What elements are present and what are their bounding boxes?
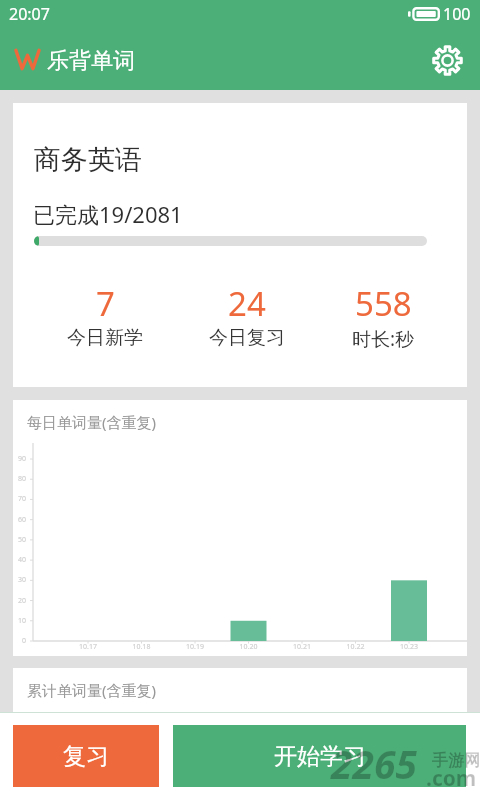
staticText: 今日新学 bbox=[67, 326, 143, 350]
staticText: 558 bbox=[355, 281, 412, 326]
button[interactable]: 复习 bbox=[13, 725, 159, 787]
staticText: 100 bbox=[443, 3, 471, 25]
staticText: 已完成19/2081 bbox=[33, 199, 183, 229]
staticText: 2265 bbox=[331, 737, 417, 790]
button[interactable]: 累计单词量(含重复) bbox=[13, 668, 467, 712]
staticText: 累计单词量(含重复) bbox=[27, 680, 157, 700]
button[interactable]: 商务英语 bbox=[13, 103, 467, 387]
button[interactable]: Settings bbox=[425, 38, 469, 82]
button[interactable]: 开始学习 bbox=[173, 725, 466, 787]
button[interactable]: 每日单词量(含重复) bbox=[13, 400, 467, 656]
staticText: 7 bbox=[96, 281, 115, 326]
staticText: 每日单词量(含重复) bbox=[27, 412, 157, 432]
staticText: 复习 bbox=[63, 742, 109, 771]
staticText: 20:07 bbox=[9, 3, 50, 25]
staticText: .com bbox=[426, 764, 477, 793]
staticText: 今日复习 bbox=[209, 326, 285, 350]
staticText: 时长:秒 bbox=[352, 326, 415, 352]
staticText: 商务英语 bbox=[34, 143, 142, 177]
staticText: 开始学习 bbox=[274, 742, 366, 771]
staticText: 24 bbox=[228, 281, 266, 326]
staticText: 手游网 bbox=[432, 751, 480, 771]
staticText: 乐背单词 bbox=[47, 47, 135, 75]
